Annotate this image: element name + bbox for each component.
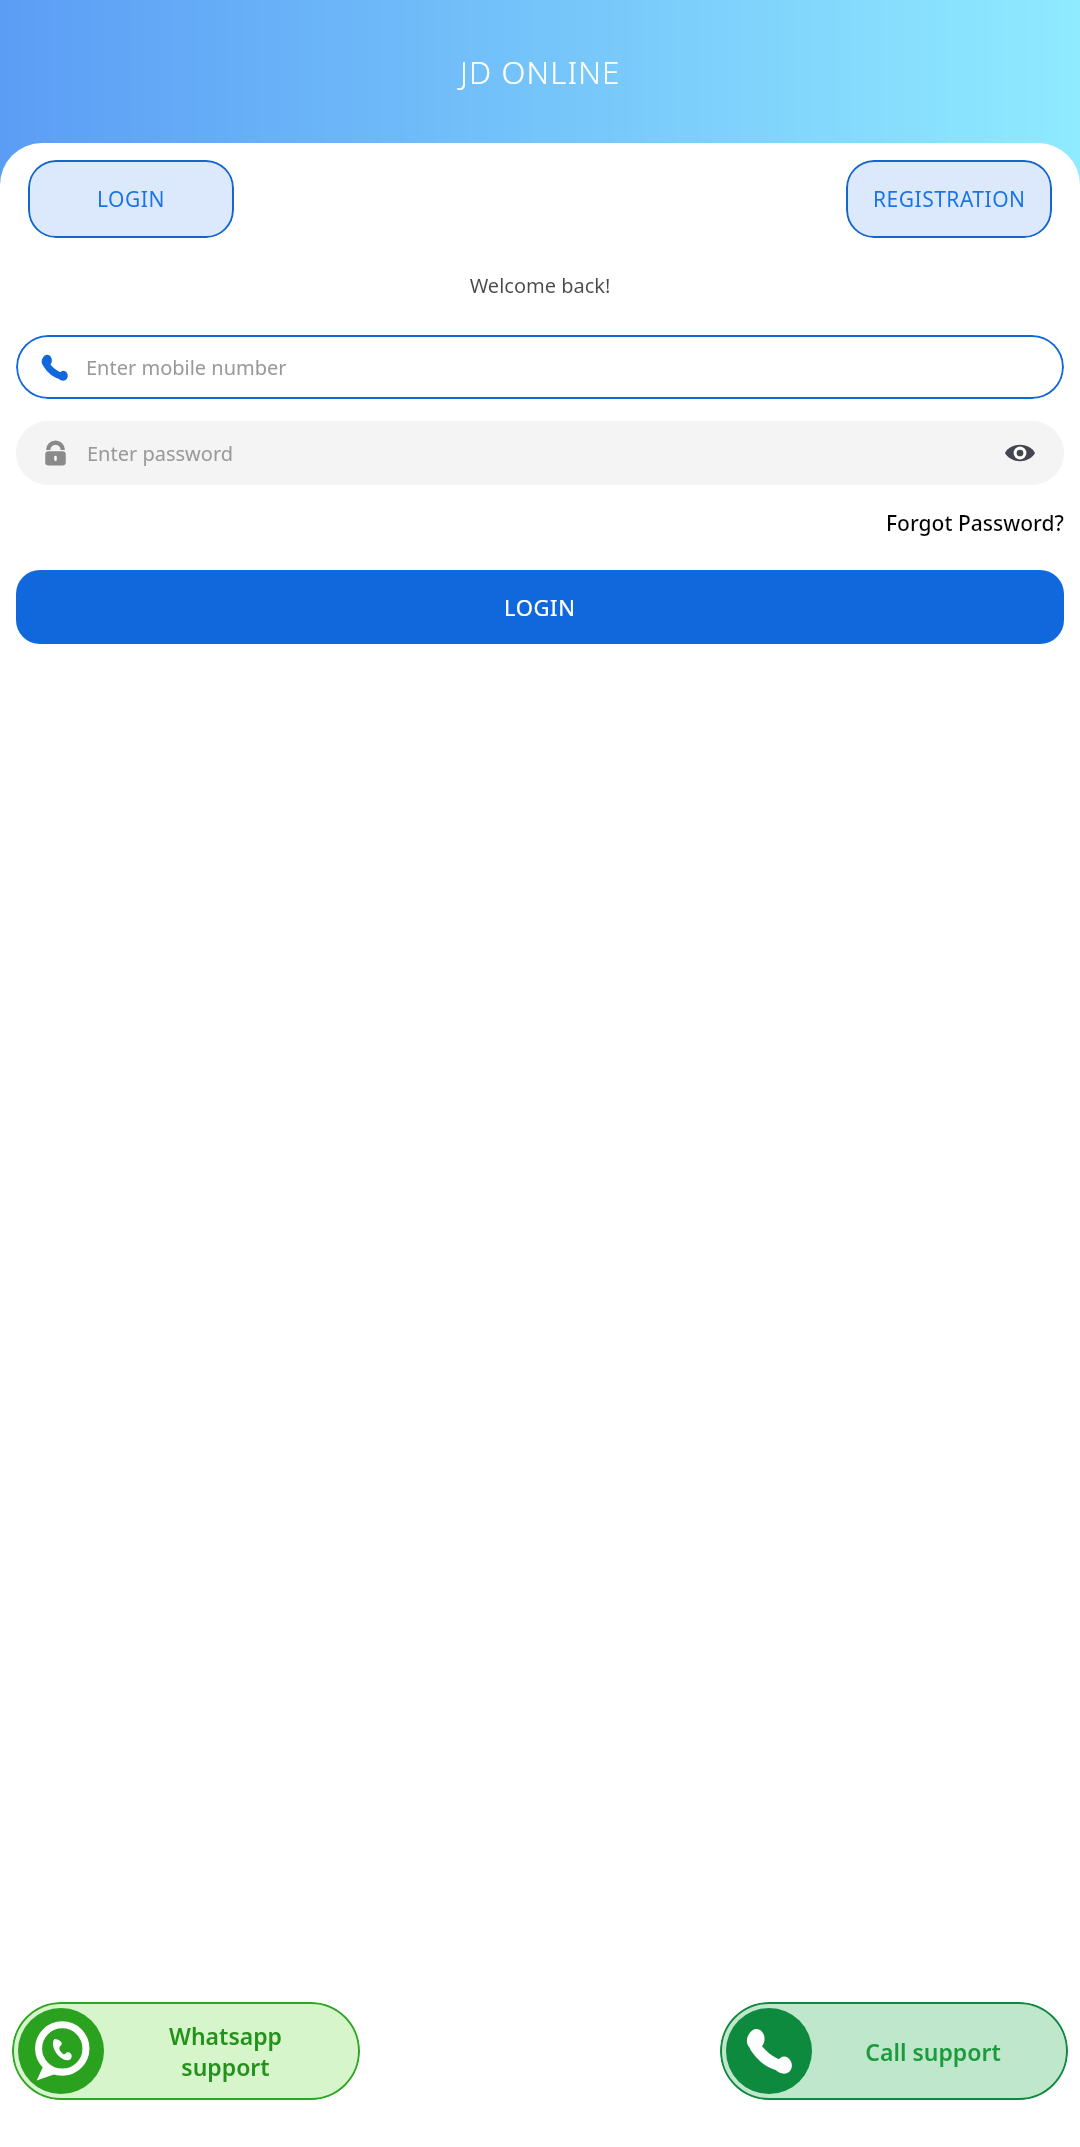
staticText: LOGIN [97, 185, 165, 214]
staticText: Enter password [87, 440, 234, 467]
button[interactable]: Enter password [16, 421, 1064, 485]
staticText: Welcome back! [0, 272, 1080, 299]
button[interactable]: Whatsapp support [12, 2002, 360, 2100]
button[interactable]: Call support [720, 2002, 1068, 2100]
button[interactable]: REGISTRATION [846, 160, 1052, 238]
staticText: Forgot Password? [886, 509, 1064, 538]
button[interactable]: Enter mobile number [16, 335, 1064, 399]
staticText: LOGIN [504, 592, 576, 622]
staticText: Call support [865, 2036, 1001, 2067]
staticText: Enter mobile number [86, 354, 287, 381]
button[interactable]: LOGIN [16, 570, 1064, 644]
staticText: support [181, 2051, 270, 2082]
staticText: Whatsapp [169, 2020, 282, 2051]
button[interactable]: Show password [1000, 433, 1040, 473]
button[interactable]: Forgot Password? [0, 509, 1064, 538]
button[interactable]: LOGIN [28, 160, 234, 238]
staticText: JD ONLINE [460, 51, 621, 93]
staticText: REGISTRATION [873, 185, 1026, 214]
